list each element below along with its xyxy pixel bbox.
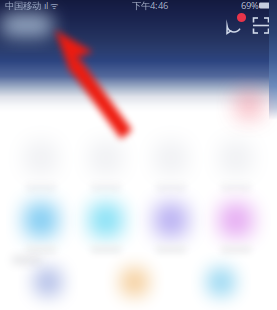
staticText: 中国移动 ıl ᯤ	[5, 0, 59, 12]
button[interactable]: Messages	[223, 12, 249, 38]
button[interactable]	[8, 138, 73, 194]
button[interactable]	[138, 138, 203, 194]
button[interactable]: Scan	[249, 12, 273, 38]
button[interactable]	[0, 13, 54, 37]
button[interactable]	[8, 200, 73, 256]
button[interactable]	[73, 138, 138, 194]
button[interactable]	[203, 200, 268, 256]
button[interactable]	[138, 200, 203, 256]
staticText: 下午4:46	[132, 0, 168, 12]
staticText: 69%	[241, 0, 259, 12]
button[interactable]	[73, 200, 138, 256]
button[interactable]	[203, 138, 268, 194]
